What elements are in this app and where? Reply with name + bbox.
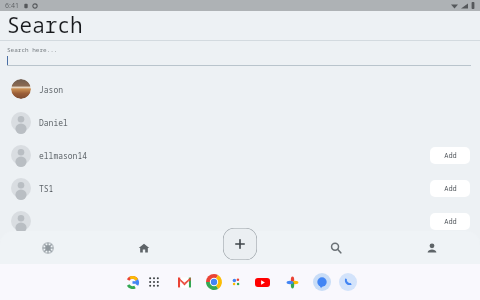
button[interactable]: Chrome <box>204 272 224 292</box>
button[interactable]: ellmason14 <box>0 138 480 171</box>
button[interactable]: Google <box>122 272 142 292</box>
button[interactable]: Add <box>430 213 470 230</box>
button[interactable]: Add <box>430 180 470 197</box>
button[interactable]: All apps <box>144 272 164 292</box>
button[interactable]: TS1 <box>0 171 480 204</box>
staticText: Search <box>7 11 83 38</box>
button[interactable]: Add <box>0 204 480 237</box>
button[interactable]: Gmail <box>174 272 194 292</box>
button[interactable]: Daniel <box>0 105 480 138</box>
staticText: Add <box>444 217 457 227</box>
button[interactable]: Home <box>96 231 192 264</box>
button[interactable]: YouTube <box>252 272 272 292</box>
staticText: ellmason14 <box>39 150 87 161</box>
staticText: 6:41 <box>5 1 19 11</box>
button[interactable]: Search here... <box>0 41 480 66</box>
button[interactable]: Photos <box>282 272 302 292</box>
button[interactable]: Search <box>288 231 384 264</box>
staticText: Jason <box>39 84 63 95</box>
button[interactable]: Jason <box>0 72 480 105</box>
button[interactable]: Add <box>430 147 470 164</box>
button[interactable]: Phone <box>338 272 358 292</box>
button[interactable]: Messages <box>312 272 332 292</box>
staticText: Add <box>444 184 457 194</box>
button[interactable]: Profile <box>384 231 480 264</box>
staticText: Daniel <box>39 117 68 128</box>
button[interactable]: Explore <box>0 231 96 264</box>
button[interactable]: Add <box>223 228 257 260</box>
staticText: Search here... <box>7 46 58 54</box>
button[interactable]: Assistant <box>226 272 246 292</box>
staticText: Add <box>444 151 457 161</box>
staticText: TS1 <box>39 183 54 194</box>
